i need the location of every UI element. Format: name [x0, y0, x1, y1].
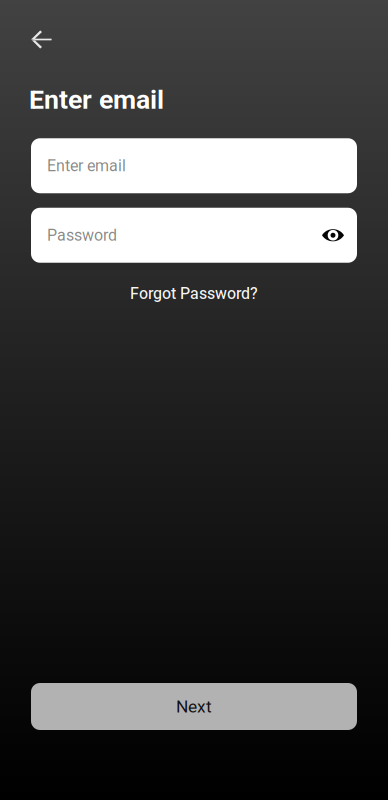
button[interactable]: Forgot Password? [0, 277, 388, 310]
button[interactable]: Next [0, 683, 388, 730]
staticText: Enter email [47, 156, 126, 175]
button[interactable]: Password [0, 208, 388, 263]
button[interactable]: Back [31, 31, 75, 49]
staticText: Password [47, 226, 117, 245]
staticText: Enter email [29, 84, 164, 115]
staticText: Forgot Password? [130, 284, 258, 303]
button[interactable]: Show password [322, 228, 344, 242]
button[interactable]: Enter email [0, 138, 388, 193]
staticText: Next [176, 696, 212, 717]
